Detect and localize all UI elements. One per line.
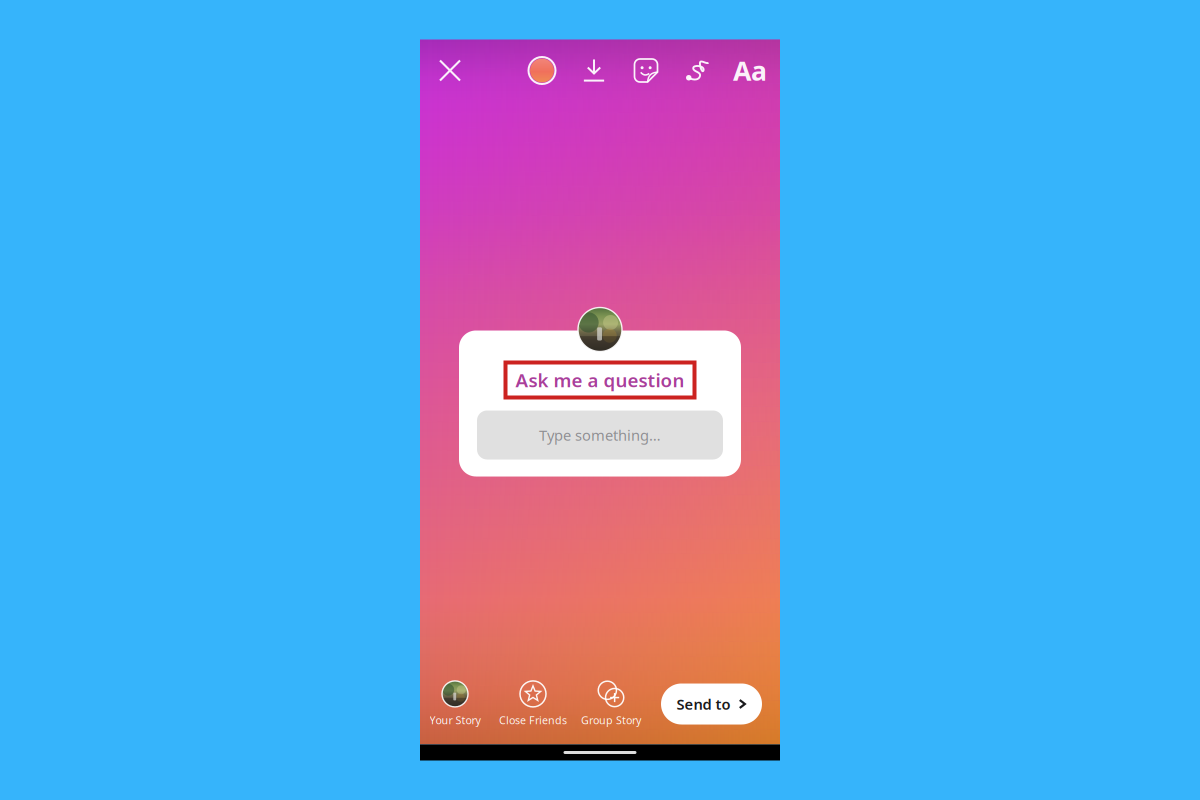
button[interactable]: Color picker (516, 47, 568, 93)
button[interactable]: Close Friends (494, 680, 572, 727)
staticText: Group Story (581, 713, 641, 727)
staticText: Close Friends (499, 713, 567, 727)
button[interactable]: Group Story (572, 680, 650, 727)
staticText: Type something… (539, 425, 661, 445)
button[interactable]: Close (428, 47, 472, 93)
button[interactable]: Draw (672, 47, 724, 93)
button[interactable]: Save (568, 47, 620, 93)
staticText: Your Story (429, 713, 480, 727)
staticText: Aa (733, 53, 767, 88)
staticText: Send to (676, 694, 730, 714)
button[interactable]: Send to (661, 683, 762, 724)
button[interactable]: Stickers (620, 47, 672, 93)
button[interactable]: Your Story (416, 680, 494, 727)
staticText: Ask me a question (515, 368, 684, 392)
button[interactable]: Text (724, 47, 776, 93)
